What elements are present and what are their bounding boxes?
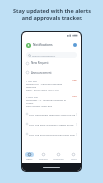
button[interactable]: Request	[36, 152, 51, 161]
staticText: Announcement	[31, 71, 52, 75]
button[interactable]: More	[66, 152, 81, 161]
staticText: Alerts	[26, 158, 33, 161]
button[interactable]: Profile	[73, 43, 77, 47]
button[interactable]: 2 days ago	[22, 93, 81, 109]
staticText: Alert	[72, 95, 77, 98]
button[interactable]: Why The Price forecasts plan ends now	[22, 129, 81, 139]
staticText: 2 days ago	[26, 95, 39, 98]
button[interactable]: Search notifications	[26, 52, 77, 58]
staticText: Why The Daily Standup's Stages move	[29, 123, 74, 126]
staticText: Request	[39, 158, 48, 161]
button[interactable]: Approvals	[51, 152, 66, 161]
staticText: Why The Price forecasts plan ends now	[29, 133, 75, 136]
button[interactable]: New Request	[22, 58, 81, 68]
button[interactable]: Announcement	[22, 68, 81, 77]
staticText: Notifications	[33, 43, 53, 47]
staticText: New Request	[31, 61, 49, 65]
staticText: New	[72, 79, 77, 82]
staticText: Why Timesheets approvals have this be	[29, 113, 76, 116]
button[interactable]: Why The Daily Standup's Stages move	[22, 119, 81, 129]
staticText: Reminder : 2 - Material samples to colle…	[26, 98, 72, 107]
button[interactable]: Why Timesheets approvals have this be	[22, 109, 81, 119]
staticText: 1 day ago	[26, 79, 37, 82]
button[interactable]: Alerts	[22, 152, 36, 161]
staticText: Search notifications	[32, 54, 56, 57]
button[interactable]: 1 day ago	[22, 77, 81, 93]
staticText: More	[71, 158, 77, 161]
staticText: Stay updated with the alerts and approva…	[13, 7, 91, 21]
staticText: Approvals	[53, 158, 64, 161]
staticText: Request #1 - Payment pending approval fr…	[26, 82, 72, 91]
